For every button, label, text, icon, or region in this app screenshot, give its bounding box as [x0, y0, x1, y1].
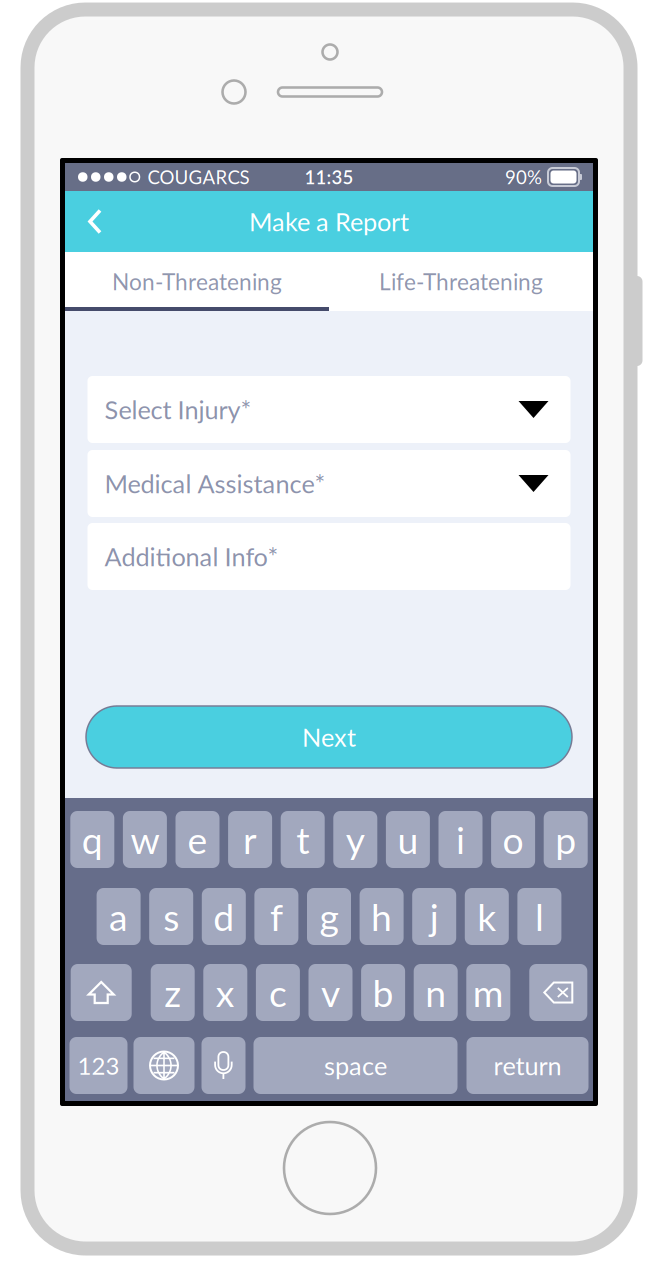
button[interactable]: z	[151, 964, 195, 1021]
staticText: j	[430, 894, 439, 939]
button[interactable]	[529, 964, 587, 1021]
staticText: Select Injury*	[104, 394, 251, 425]
button[interactable]	[71, 964, 132, 1021]
staticText: k	[477, 894, 496, 939]
button[interactable]: w	[123, 811, 167, 868]
staticText: s	[163, 894, 179, 939]
staticText: 123	[77, 1051, 119, 1080]
button[interactable]: h	[360, 888, 404, 945]
staticText: f	[270, 894, 283, 939]
button[interactable]: i	[438, 811, 482, 868]
button[interactable]: Select Injury*	[87, 376, 570, 443]
staticText: z	[164, 970, 181, 1015]
staticText: Medical Assistance*	[104, 468, 325, 499]
button[interactable]	[133, 1037, 194, 1094]
staticText: q	[82, 817, 103, 862]
button[interactable]: a	[97, 888, 141, 945]
staticText: 11:35	[304, 166, 353, 188]
button[interactable]: q	[70, 811, 114, 868]
button[interactable]: Life-Threatening	[329, 252, 593, 311]
button[interactable]: Non-Threatening	[65, 252, 329, 311]
button[interactable]: s	[149, 888, 193, 945]
staticText: r	[243, 817, 257, 862]
staticText: Non-Threatening	[112, 268, 282, 295]
staticText: t	[296, 817, 309, 862]
button[interactable]: Medical Assistance*	[87, 450, 570, 517]
button[interactable]: 123	[69, 1037, 127, 1094]
button[interactable]: space	[253, 1037, 457, 1094]
button[interactable]: Back	[75, 191, 119, 252]
button[interactable]: n	[414, 964, 458, 1021]
button[interactable]: p	[544, 811, 588, 868]
button[interactable]: y	[333, 811, 377, 868]
button[interactable]: v	[308, 964, 352, 1021]
button[interactable]: g	[307, 888, 351, 945]
button[interactable]: Additional Info*	[87, 523, 570, 590]
staticText: p	[555, 817, 576, 862]
button[interactable]: r	[228, 811, 272, 868]
staticText: space	[324, 1050, 387, 1081]
button[interactable]: k	[465, 888, 509, 945]
staticText: Next	[302, 722, 356, 752]
button[interactable]: e	[175, 811, 219, 868]
staticText: u	[397, 817, 418, 862]
staticText: l	[535, 894, 544, 939]
button[interactable]: return	[466, 1037, 588, 1094]
button[interactable]: m	[466, 964, 510, 1021]
button[interactable]: f	[254, 888, 298, 945]
button[interactable]	[201, 1037, 245, 1094]
button[interactable]: x	[203, 964, 247, 1021]
staticText: m	[473, 970, 504, 1015]
staticText: y	[346, 817, 365, 862]
staticText: i	[456, 817, 465, 862]
staticText: b	[373, 970, 394, 1015]
button[interactable]: u	[386, 811, 430, 868]
staticText: e	[187, 817, 207, 862]
staticText: return	[493, 1050, 561, 1081]
button[interactable]: o	[491, 811, 535, 868]
staticText: x	[216, 970, 235, 1015]
staticText: d	[213, 894, 234, 939]
staticText: c	[269, 970, 287, 1015]
staticText: g	[319, 894, 338, 939]
button[interactable]: j	[412, 888, 456, 945]
staticText: Make a Report	[249, 206, 409, 237]
button[interactable]: l	[517, 888, 561, 945]
staticText: a	[109, 894, 128, 939]
staticText: Life-Threatening	[379, 268, 543, 295]
button[interactable]: c	[256, 964, 300, 1021]
staticText: 90%	[505, 166, 542, 188]
staticText: w	[130, 817, 159, 862]
button[interactable]: Next	[86, 706, 572, 768]
staticText: Additional Info*	[104, 541, 278, 572]
staticText: COUGARCS	[147, 166, 249, 188]
button[interactable]: d	[202, 888, 246, 945]
button[interactable]: t	[281, 811, 325, 868]
staticText: n	[425, 970, 446, 1015]
staticText: o	[503, 817, 524, 862]
button[interactable]: b	[361, 964, 405, 1021]
staticText: h	[371, 894, 392, 939]
staticText: v	[321, 970, 340, 1015]
